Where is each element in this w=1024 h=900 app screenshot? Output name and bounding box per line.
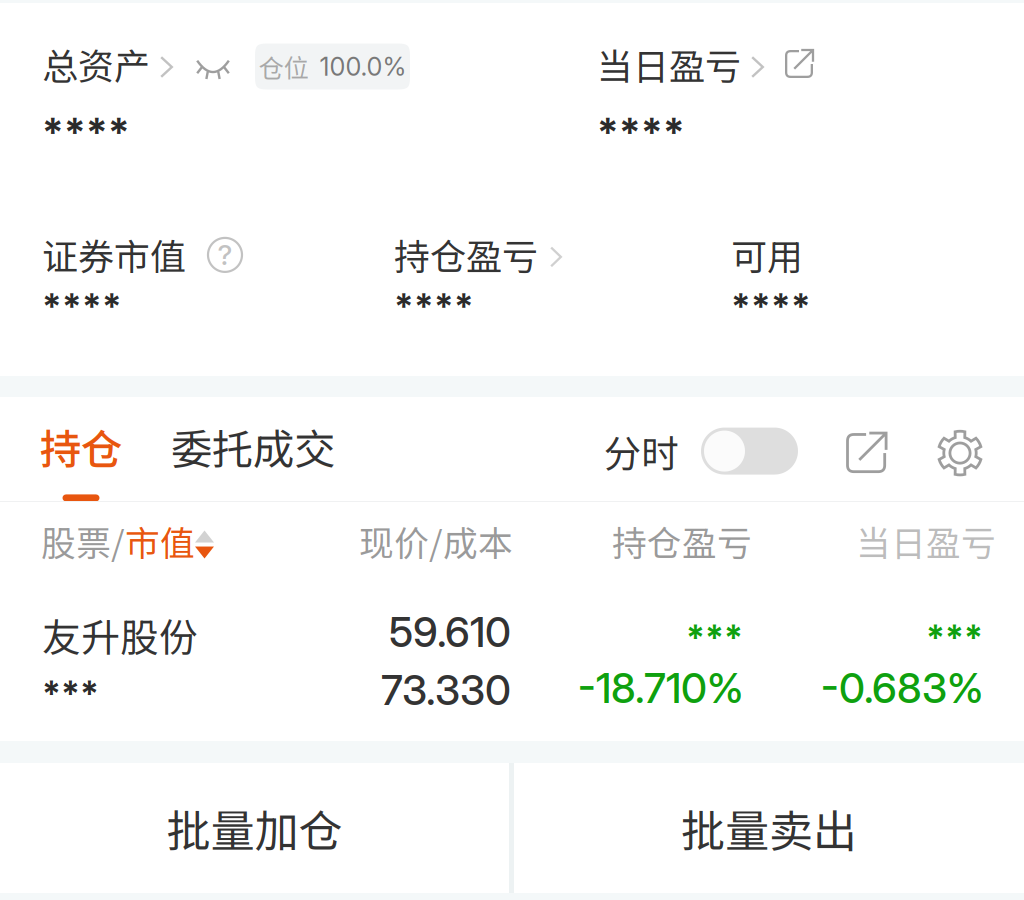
staticText: 市值 [125, 516, 195, 566]
button[interactable]: 持仓 [41, 417, 121, 501]
button[interactable]: 证券市值 [42, 236, 242, 328]
staticText: 持仓盈亏 [612, 516, 752, 566]
staticText: 持仓 [40, 417, 122, 476]
button[interactable]: 分时 [604, 417, 798, 475]
button[interactable]: 批量加仓 [0, 763, 509, 893]
button[interactable]: 股票/ [41, 516, 214, 566]
staticText: **** [42, 108, 130, 156]
staticText: **** [731, 284, 811, 328]
staticText: 73.330 [381, 665, 511, 715]
button[interactable]: Share [846, 417, 887, 477]
staticText: *** [42, 673, 99, 715]
button[interactable]: 批量卖出 [514, 763, 1024, 893]
staticText: -0.683% [821, 663, 983, 713]
staticText: 友升股份 [42, 607, 198, 663]
staticText: 委托成交 [171, 417, 335, 476]
button[interactable]: 持仓盈亏 [394, 236, 562, 328]
staticText: *** [686, 617, 743, 659]
staticText: 总资产 [42, 38, 150, 90]
button[interactable]: 友升股份 [0, 572, 1024, 741]
staticText: 仓位 [258, 48, 308, 85]
staticText: 股票/ [41, 516, 125, 566]
staticText: *** [926, 617, 983, 659]
staticText: -18.710% [578, 663, 743, 713]
staticText: **** [394, 284, 474, 328]
staticText: 可用 [731, 228, 803, 280]
staticText: 现价/成本 [359, 516, 513, 566]
staticText: 59.610 [389, 607, 511, 657]
staticText: 分时 [604, 424, 678, 478]
staticText: 当日盈亏 [597, 38, 741, 90]
staticText: 证券市值 [42, 228, 186, 280]
button[interactable]: 当日盈亏 [597, 41, 814, 156]
button[interactable]: 委托成交 [171, 417, 335, 476]
staticText: ? [217, 238, 232, 272]
staticText: 持仓盈亏 [394, 228, 538, 280]
staticText: **** [42, 284, 122, 328]
staticText: **** [597, 108, 685, 156]
button[interactable]: Settings [936, 417, 984, 477]
staticText: 批量卖出 [681, 796, 857, 860]
staticText: 100.0% [319, 51, 406, 82]
staticText: 批量加仓 [166, 796, 342, 860]
staticText: 当日盈亏 [856, 516, 996, 566]
button[interactable]: 总资产 [42, 41, 410, 156]
